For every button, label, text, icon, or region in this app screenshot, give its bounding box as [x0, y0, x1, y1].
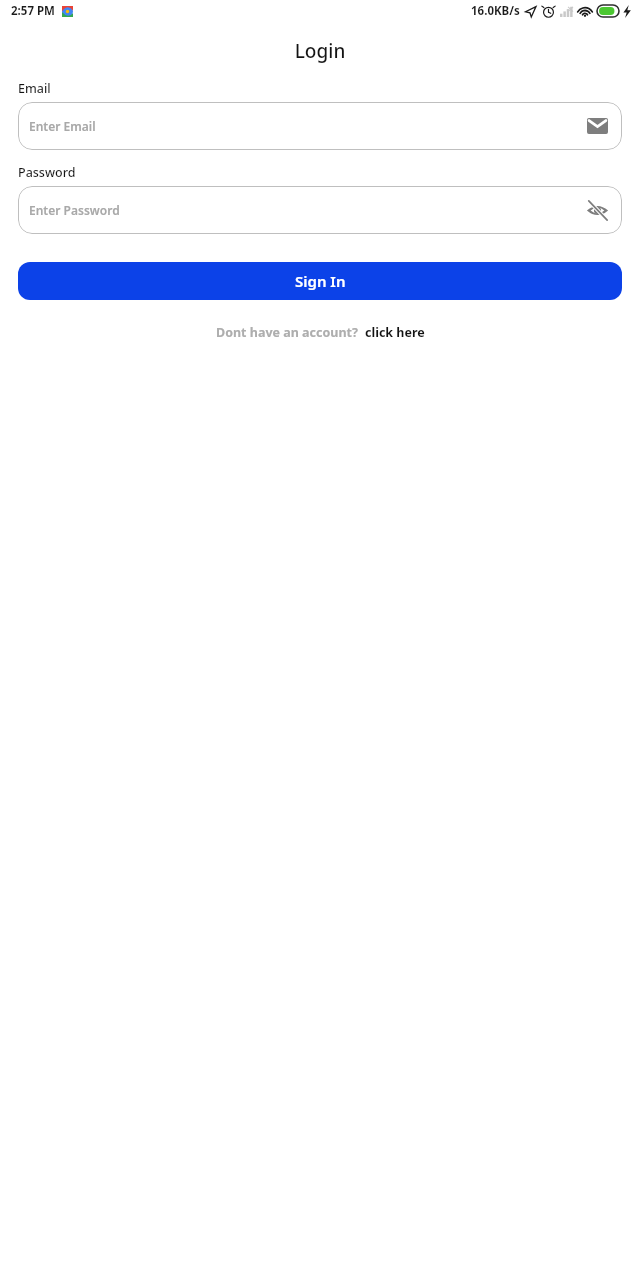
- staticText: click here: [365, 324, 425, 341]
- button[interactable]: Sign In: [18, 262, 622, 300]
- button[interactable]: Show password: [584, 197, 610, 223]
- staticText: Email: [18, 80, 51, 97]
- button[interactable]: Enter Email: [18, 102, 622, 150]
- button[interactable]: Email: [584, 113, 610, 139]
- staticText: Dont have an account?: [216, 324, 358, 341]
- button[interactable]: Enter Password: [18, 186, 622, 234]
- staticText: Login: [0, 38, 640, 64]
- staticText: Enter Email: [29, 118, 96, 134]
- staticText: Password: [18, 164, 76, 181]
- button[interactable]: click here: [365, 324, 425, 341]
- staticText: Enter Password: [29, 202, 120, 218]
- staticText: Sign In: [295, 271, 346, 291]
- staticText: 2:57 PM: [11, 3, 55, 19]
- staticText: 16.0KB/s: [471, 3, 520, 19]
